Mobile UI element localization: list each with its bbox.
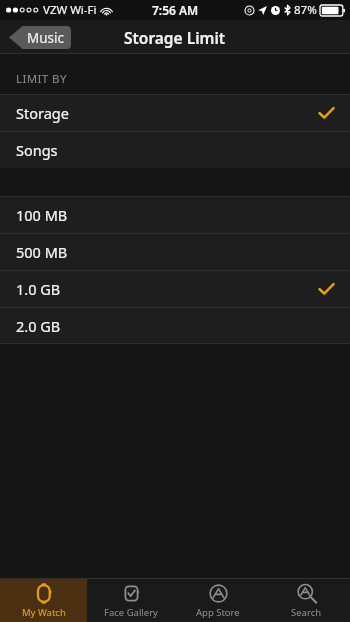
staticText: Storage xyxy=(16,103,69,123)
staticText: VZW Wi-Fi xyxy=(43,2,97,18)
button[interactable]: Search xyxy=(262,579,350,622)
staticText: 1.0 GB xyxy=(16,279,61,299)
staticText: 100 MB xyxy=(16,205,68,225)
staticText: App Store xyxy=(196,606,240,619)
button[interactable]: 1.0 GB xyxy=(0,270,350,307)
staticText: Face Gallery xyxy=(104,606,158,619)
button[interactable]: Songs xyxy=(0,131,350,168)
button[interactable]: Back to Music xyxy=(9,26,71,49)
staticText: LIMIT BY xyxy=(16,71,67,87)
staticText: 87% xyxy=(294,2,317,18)
staticText: Songs xyxy=(16,140,58,160)
button[interactable]: Face Gallery xyxy=(87,579,174,622)
staticText: Storage Limit xyxy=(124,27,226,48)
staticText: Search xyxy=(291,606,322,619)
staticText: Music xyxy=(27,29,65,47)
staticText: 500 MB xyxy=(16,242,68,262)
button[interactable]: My Watch xyxy=(0,579,87,622)
button[interactable]: 500 MB xyxy=(0,233,350,270)
button[interactable]: 2.0 GB xyxy=(0,307,350,344)
button[interactable]: App Store xyxy=(174,579,262,622)
staticText: 2.0 GB xyxy=(16,316,61,336)
button[interactable]: Storage xyxy=(0,94,350,131)
staticText: My Watch xyxy=(22,606,66,619)
staticText: 7:56 AM xyxy=(152,2,199,18)
button[interactable]: 100 MB xyxy=(0,196,350,233)
